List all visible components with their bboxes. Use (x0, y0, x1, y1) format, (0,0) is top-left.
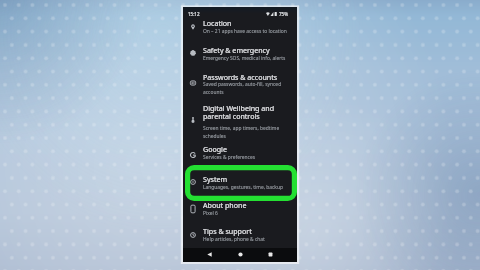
staticText: Help articles, phone & chat (203, 236, 265, 243)
button[interactable] (183, 41, 297, 67)
staticText: 15:12 (188, 11, 200, 17)
staticText: Google (203, 144, 227, 154)
button[interactable]: Home (235, 249, 246, 260)
button[interactable] (183, 68, 297, 98)
staticText: Languages, gestures, time, backup (203, 184, 283, 191)
staticText: Saved passwords, auto-fill, synced accou… (203, 81, 283, 95)
staticText: On – 21 apps have access to location (203, 28, 287, 35)
staticText: Safety & emergency (203, 45, 270, 55)
button[interactable]: Back (204, 249, 215, 260)
staticText: System (203, 174, 228, 184)
staticText: Passwords & accounts (203, 72, 278, 82)
staticText: Digital Wellbeing and parental controls (203, 103, 277, 121)
staticText: Pixel 6 (203, 210, 218, 217)
button[interactable] (183, 140, 297, 165)
button[interactable]: Recent apps (265, 249, 276, 260)
staticText: Screen time, app timers, bedtime schedul… (203, 125, 283, 139)
button[interactable] (183, 196, 297, 223)
button[interactable] (183, 170, 297, 196)
button[interactable] (183, 14, 297, 40)
staticText: Emergency SOS, medical info, alerts (203, 55, 286, 62)
button[interactable] (183, 99, 297, 141)
button[interactable] (183, 222, 297, 248)
staticText: About phone (203, 200, 247, 210)
staticText: 75% (279, 11, 288, 17)
staticText: Tips & support (203, 226, 252, 236)
staticText: Services & preferences (203, 154, 256, 161)
staticText: Location (203, 18, 232, 28)
